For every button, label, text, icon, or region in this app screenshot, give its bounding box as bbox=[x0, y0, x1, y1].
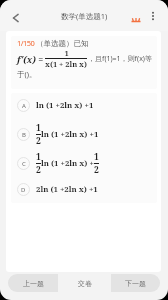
staticText: 2ln (1 +2ln x) +1 bbox=[36, 184, 98, 195]
staticText: B bbox=[22, 131, 26, 139]
button[interactable]: D bbox=[11, 178, 157, 201]
staticText: 交卷 bbox=[78, 279, 92, 288]
staticText: 1/150 bbox=[17, 38, 35, 48]
button[interactable]: C bbox=[11, 149, 157, 178]
staticText: C bbox=[22, 160, 26, 168]
staticText: f′(x) = bbox=[17, 53, 44, 65]
staticText: 1 bbox=[94, 151, 99, 163]
staticText: A bbox=[22, 102, 26, 110]
staticText: ln (1 +2ln x) +1 bbox=[36, 100, 94, 111]
button[interactable]: 下一题 bbox=[111, 274, 160, 292]
staticText: 1 bbox=[64, 48, 69, 58]
staticText: ln (1 +2ln x) + bbox=[41, 158, 94, 169]
staticText: 下一题 bbox=[125, 279, 146, 288]
staticText: 1 bbox=[36, 122, 41, 134]
button[interactable]: Collect bbox=[129, 13, 143, 27]
staticText: ，且f(1)=1，则f(x)等 bbox=[88, 54, 152, 64]
staticText: 1 bbox=[36, 151, 41, 163]
staticText: D bbox=[21, 186, 26, 194]
staticText: （单选题）已知 bbox=[36, 39, 89, 48]
staticText: 2 bbox=[36, 164, 41, 176]
button[interactable]: More options bbox=[146, 9, 160, 23]
staticText: x(1 + 2ln x) bbox=[45, 59, 87, 69]
button[interactable]: B bbox=[11, 120, 157, 149]
button[interactable]: 上一题 bbox=[8, 274, 58, 292]
staticText: 数学(单选题1) bbox=[61, 11, 108, 21]
button[interactable]: Back bbox=[8, 8, 24, 24]
button[interactable]: A bbox=[11, 93, 157, 120]
staticText: ln (1 +2ln x) +1 bbox=[41, 129, 99, 140]
staticText: 于()。 bbox=[17, 69, 37, 79]
button[interactable]: 交卷 bbox=[58, 274, 111, 292]
staticText: 上一题 bbox=[23, 279, 44, 288]
staticText: 2 bbox=[94, 164, 99, 176]
staticText: 2 bbox=[36, 135, 41, 147]
